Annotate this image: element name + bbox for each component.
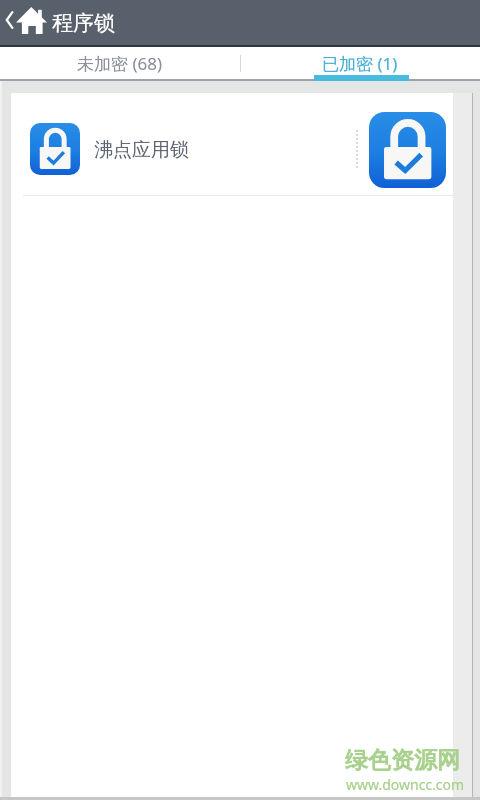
staticText: 绿色资源网 xyxy=(345,746,460,775)
button[interactable]: 已加密 (1) xyxy=(240,47,480,81)
staticText: 程序锁 xyxy=(52,10,115,36)
button[interactable]: 沸点应用锁 xyxy=(11,93,453,196)
staticText: 已加密 (1) xyxy=(322,52,398,75)
staticText: 沸点应用锁 xyxy=(94,138,189,162)
button[interactable]: Back to home xyxy=(0,0,50,47)
button[interactable]: Unlock app xyxy=(369,112,446,188)
staticText: www.downcc.com xyxy=(346,775,465,794)
button[interactable]: 未加密 (68) xyxy=(0,47,240,81)
staticText: 未加密 (68) xyxy=(77,52,163,75)
